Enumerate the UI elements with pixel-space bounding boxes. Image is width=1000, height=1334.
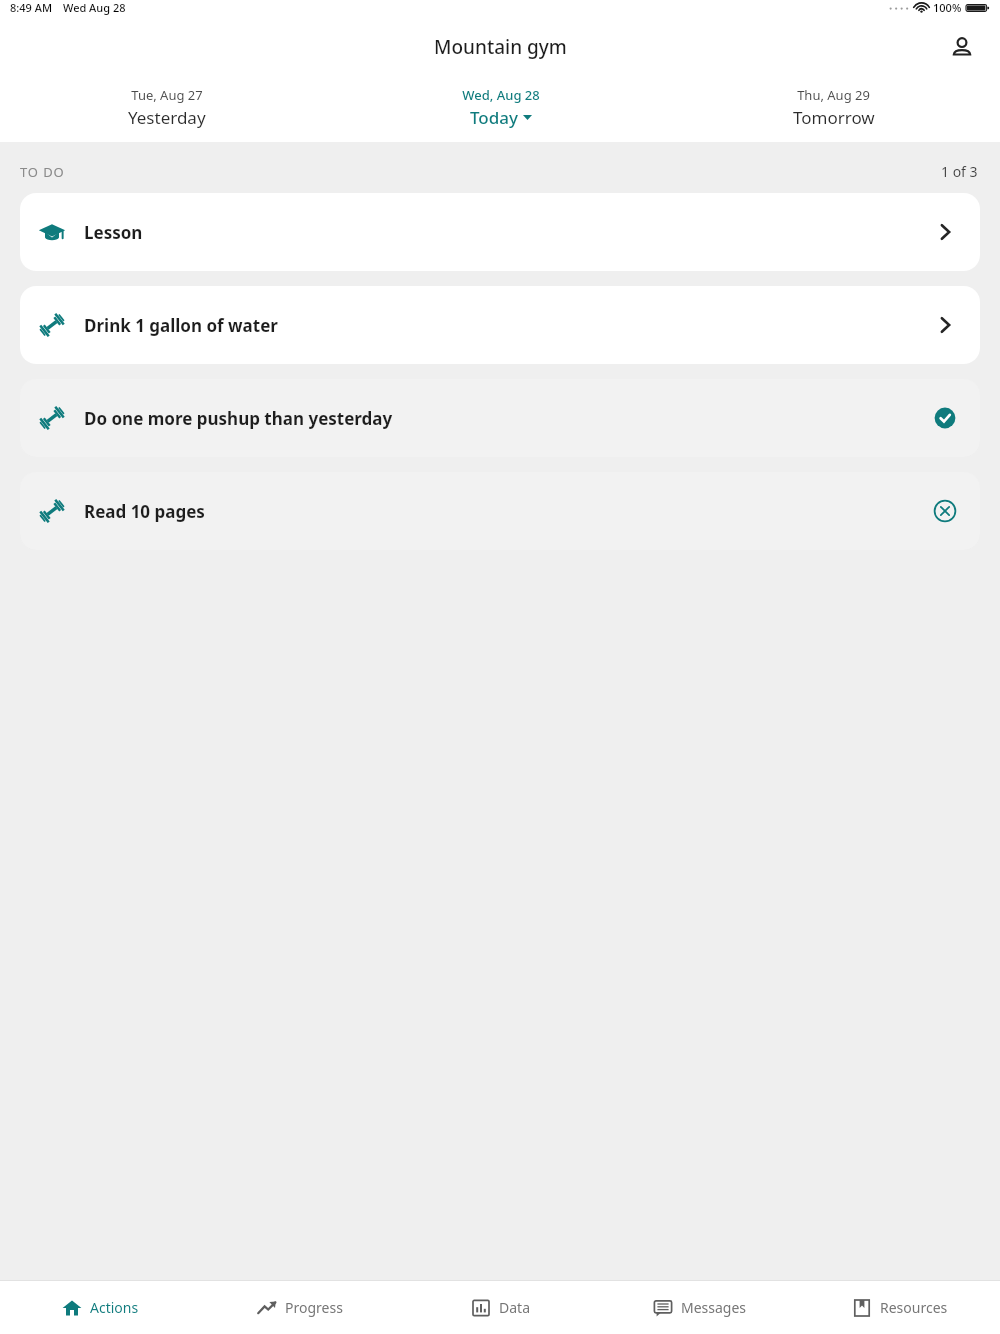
staticText: Today	[470, 106, 518, 129]
staticText: Tomorrow	[793, 106, 875, 129]
staticText: Messages	[681, 1298, 747, 1317]
staticText: 100%	[933, 0, 962, 15]
staticText: Progress	[285, 1298, 343, 1317]
button[interactable]: Data	[400, 1281, 600, 1334]
staticText: Wed Aug 28	[63, 0, 126, 15]
staticText: Read 10 pages	[84, 500, 205, 523]
staticText: Do one more pushup than yesterday	[84, 407, 393, 430]
button[interactable]: Actions	[0, 1281, 200, 1334]
button[interactable]: Drink 1 gallon of water	[20, 286, 980, 364]
staticText: Wed, Aug 28	[462, 86, 540, 104]
button[interactable]: Wed, Aug 28	[334, 72, 667, 129]
staticText: 1 of 3	[941, 162, 978, 181]
button[interactable]: Messages	[600, 1281, 800, 1334]
button[interactable]: Lesson	[20, 193, 980, 271]
staticText: Yesterday	[128, 106, 206, 129]
staticText: Tue, Aug 27	[131, 86, 203, 104]
staticText: Drink 1 gallon of water	[84, 314, 278, 337]
button[interactable]: Account	[944, 29, 980, 65]
staticText: Actions	[90, 1298, 139, 1317]
staticText: Thu, Aug 29	[797, 86, 870, 104]
button[interactable]: Resources	[800, 1281, 1000, 1334]
staticText: TO DO	[20, 163, 65, 181]
button[interactable]: Thu, Aug 29	[667, 72, 1000, 129]
staticText: Resources	[880, 1298, 948, 1317]
button[interactable]: Progress	[200, 1281, 400, 1334]
staticText: Mountain gym	[434, 34, 567, 60]
staticText: Lesson	[84, 221, 143, 244]
button[interactable]: Tue, Aug 27	[0, 72, 334, 129]
staticText: 8:49 AM	[10, 0, 53, 15]
button[interactable]: Do one more pushup than yesterday	[20, 379, 980, 457]
button[interactable]: Read 10 pages	[20, 472, 980, 550]
staticText: Data	[499, 1298, 530, 1317]
